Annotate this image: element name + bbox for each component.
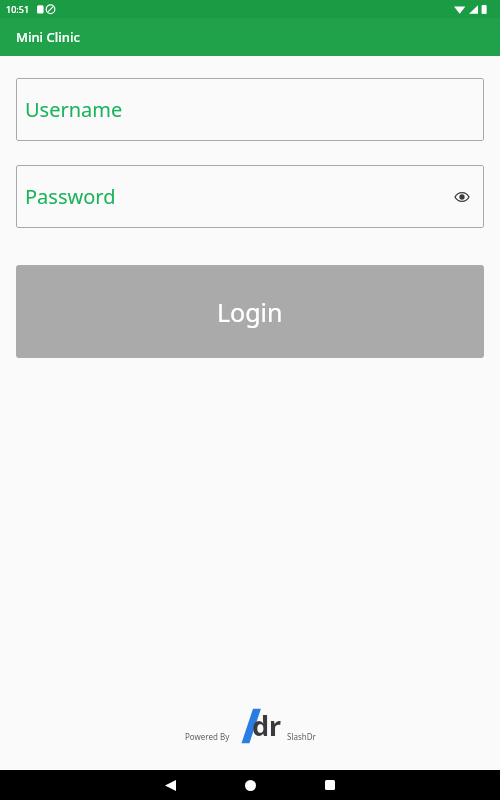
staticText: Powered By [185,731,230,742]
staticText: Password [25,183,116,210]
staticText: Login [217,295,283,329]
button[interactable]: Login [16,265,484,358]
staticText: SlashDr [287,731,316,742]
button[interactable]: Username [16,78,484,141]
button[interactable]: Back [148,770,192,800]
button[interactable]: Show password [450,185,474,209]
button[interactable]: Home [228,770,272,800]
staticText: dr [252,707,282,743]
button[interactable]: Recents [308,770,352,800]
button[interactable]: Password [16,165,484,228]
staticText: Username [25,96,123,123]
staticText: 10:51 [6,3,30,15]
staticText: Mini Clinic [16,28,80,46]
